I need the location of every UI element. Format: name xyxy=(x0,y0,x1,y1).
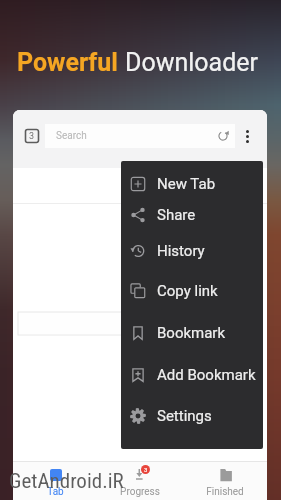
button[interactable]: Share xyxy=(121,198,263,232)
staticText: Powerful xyxy=(17,48,125,77)
staticText: History xyxy=(157,242,205,260)
staticText: Share xyxy=(157,206,196,224)
button[interactable]: Add Bookmark xyxy=(121,358,263,392)
staticText: Bookmark xyxy=(157,324,226,342)
button[interactable]: Search xyxy=(45,124,235,148)
button[interactable]: History xyxy=(121,234,263,268)
button[interactable]: New Tab xyxy=(121,167,263,201)
staticText: Copy link xyxy=(157,282,218,300)
button[interactable]: Bookmark xyxy=(121,316,263,350)
button[interactable]: Finished xyxy=(182,461,267,500)
staticText: Finished xyxy=(206,486,244,498)
staticText: Progress xyxy=(120,486,160,498)
staticText: GetAndroid.iR xyxy=(9,469,124,494)
button[interactable]: Reload xyxy=(211,124,235,148)
button[interactable]: Tab xyxy=(13,461,97,500)
button[interactable]: More options xyxy=(235,116,259,156)
staticText: 3 xyxy=(29,131,35,142)
staticText: Add Bookmark xyxy=(157,366,256,384)
staticText: Tab xyxy=(47,486,64,498)
staticText: Downloader xyxy=(125,48,259,77)
staticText: 3 xyxy=(144,466,148,473)
button[interactable]: Tabs xyxy=(25,129,39,143)
button[interactable]: Copy link xyxy=(121,274,263,308)
button[interactable]: Settings xyxy=(121,399,263,433)
staticText: New Tab xyxy=(157,175,216,193)
staticText: Settings xyxy=(157,407,212,425)
staticText: Search xyxy=(56,130,87,142)
button[interactable]: 3 xyxy=(97,461,182,500)
